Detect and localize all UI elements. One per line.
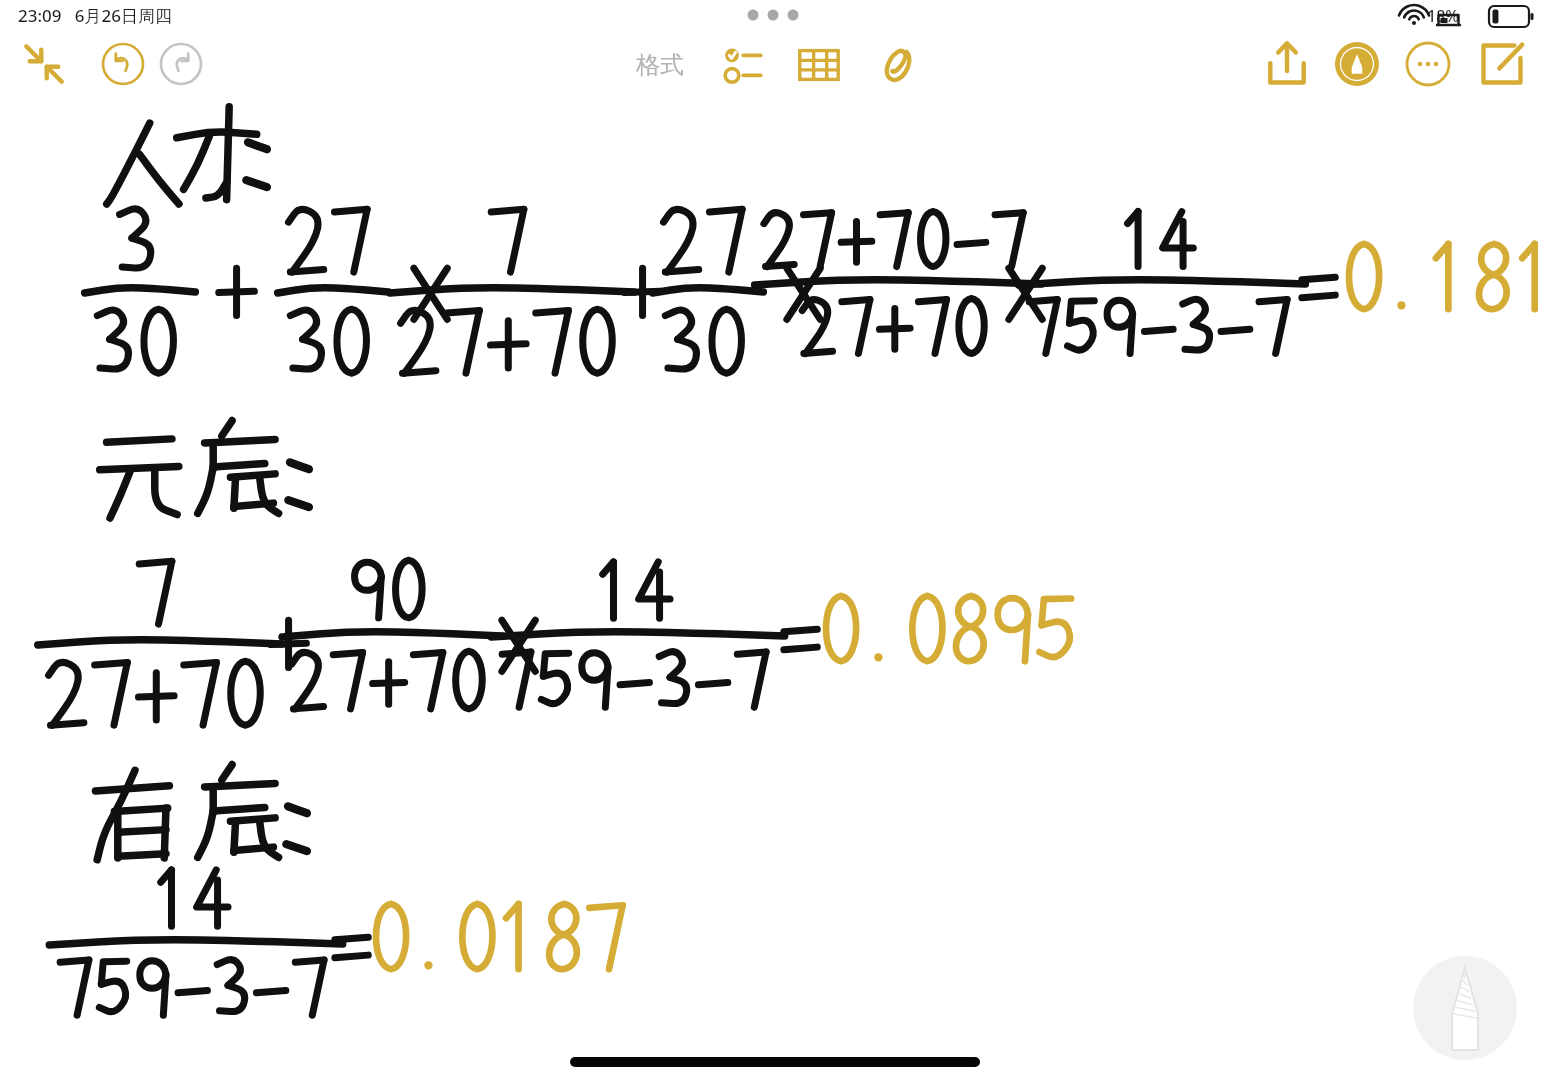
button[interactable]: Share [1263, 40, 1311, 88]
staticText: 18% [1427, 5, 1459, 27]
staticText: 格式 [636, 50, 684, 80]
staticText: 23:09 6月26日周四 [18, 4, 172, 27]
button[interactable]: Redo [159, 42, 203, 86]
button[interactable]: Attach file [872, 42, 920, 88]
button[interactable]: More options [1405, 42, 1451, 88]
button[interactable]: Pen tool [1413, 956, 1517, 1060]
button[interactable]: Collapse [24, 40, 66, 86]
button[interactable]: Compose [1478, 40, 1526, 88]
button[interactable]: 格式 [634, 44, 690, 84]
button[interactable]: Markup pen [1333, 40, 1381, 88]
button[interactable]: Insert table [795, 44, 843, 88]
button[interactable]: Checklist [720, 44, 768, 88]
button[interactable]: Undo [101, 42, 145, 86]
